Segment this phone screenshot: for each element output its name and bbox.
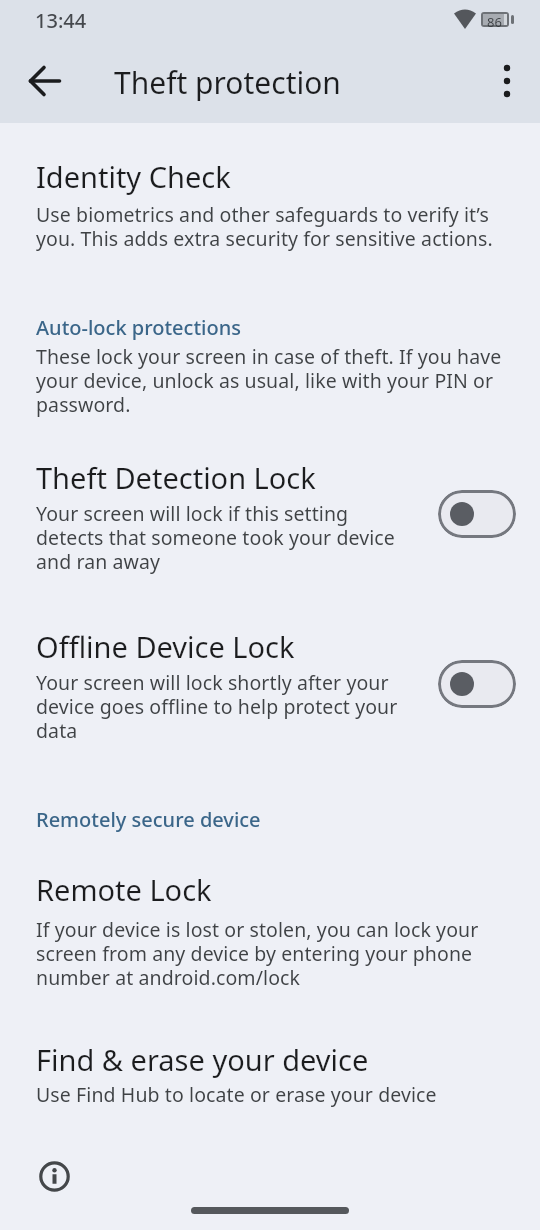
staticText: Use biometrics and other safeguards to v…	[36, 201, 493, 252]
staticText: These lock your screen in case of theft.…	[36, 343, 502, 418]
staticText: Find & erase your device	[36, 1040, 369, 1079]
button[interactable]	[438, 490, 516, 538]
staticText: Theft protection	[114, 62, 341, 103]
staticText: Your screen will lock shortly after your…	[36, 669, 398, 744]
button[interactable]	[21, 57, 69, 105]
staticText: Auto-lock protections	[36, 314, 241, 341]
staticText: Remotely secure device	[36, 806, 261, 833]
staticText: Your screen will lock if this setting de…	[36, 500, 395, 575]
staticText: Offline Device Lock	[36, 627, 295, 666]
staticText: If your device is lost or stolen, you ca…	[36, 916, 479, 991]
button[interactable]	[483, 57, 531, 105]
staticText: 13:44	[35, 7, 87, 34]
staticText: Theft Detection Lock	[36, 458, 316, 497]
staticText: 86	[487, 13, 502, 27]
staticText: Identity Check	[36, 157, 231, 196]
button[interactable]	[30, 1152, 78, 1200]
staticText: Remote Lock	[36, 870, 212, 909]
staticText: Use Find Hub to locate or erase your dev…	[36, 1081, 437, 1108]
button[interactable]	[438, 660, 516, 708]
